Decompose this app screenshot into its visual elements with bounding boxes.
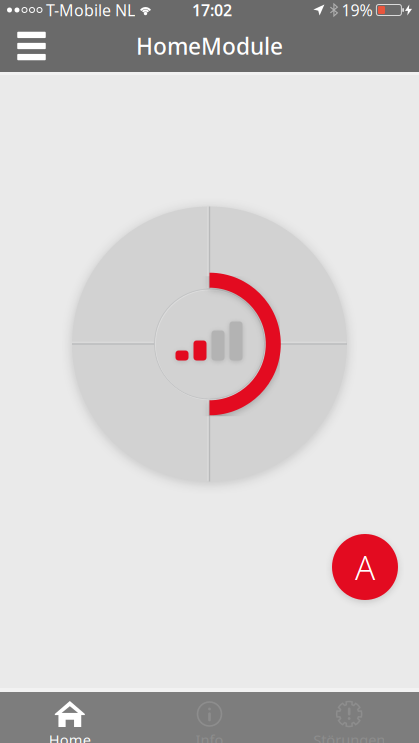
button[interactable]: Home — [0, 692, 140, 743]
staticText: Home — [49, 730, 91, 743]
button[interactable]: Add — [332, 534, 398, 600]
staticText: 17:02 — [192, 0, 232, 21]
staticText: 19% — [337, 0, 376, 21]
staticText: Störungen — [313, 730, 385, 743]
staticText: HomeModule — [136, 31, 283, 61]
staticText: Info — [195, 730, 223, 743]
staticText: T-Mobile NL — [42, 0, 139, 21]
staticText: A — [355, 545, 375, 589]
button[interactable]: Menu — [0, 20, 63, 72]
